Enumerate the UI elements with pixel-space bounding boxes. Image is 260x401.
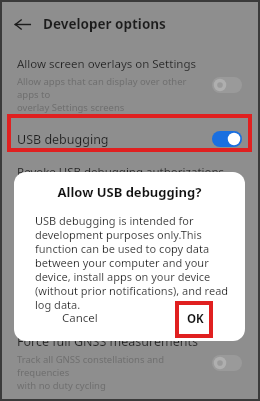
button[interactable]: Allow screen overlays on Settings [0, 47, 260, 114]
staticText: Cancel [62, 310, 98, 326]
staticText: USB debugging is intended for developmen… [35, 213, 231, 312]
staticText: USB debugging [17, 131, 109, 148]
button[interactable]: Off [212, 355, 242, 371]
staticText: Revoke USB debugging authorizations [17, 164, 225, 180]
button[interactable]: USB debugging [0, 119, 260, 159]
staticText: Allow screen overlays on Settings [17, 56, 197, 72]
staticText: Track all GNSS constellations and freque… [17, 353, 208, 392]
staticText: OK [187, 311, 204, 327]
button[interactable]: Off [212, 77, 242, 93]
staticText: Developer options [43, 15, 166, 33]
button[interactable]: Force full GNSS measurements [0, 333, 260, 401]
button[interactable]: On [212, 131, 242, 147]
staticText: Allow apps that can display over other a… [17, 75, 208, 114]
staticText: Allow USB debugging? [14, 183, 245, 201]
button[interactable]: OK [180, 308, 211, 330]
button[interactable]: Back [8, 10, 36, 38]
button[interactable]: Cancel [56, 307, 104, 329]
staticText: Force full GNSS measurements [17, 333, 198, 350]
button[interactable]: Revoke USB debugging authorizations [0, 159, 260, 185]
